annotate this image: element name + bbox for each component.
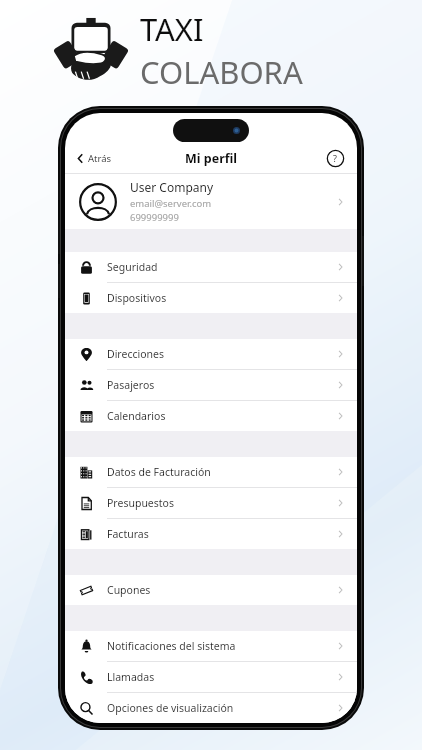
staticText: Presupuestos	[107, 496, 174, 510]
button[interactable]: Facturas	[65, 519, 357, 549]
staticText: Facturas	[107, 527, 149, 541]
button[interactable]: Cupones	[65, 575, 357, 605]
button[interactable]: Notificaciones del sistema	[65, 631, 357, 662]
staticText: COLABORA	[140, 51, 303, 93]
button[interactable]: Presupuestos	[65, 488, 357, 519]
button[interactable]: Pasajeros	[65, 370, 357, 401]
button[interactable]: Opciones de visualización	[65, 693, 357, 723]
staticText: TAXI	[140, 8, 204, 50]
staticText: Calendarios	[107, 409, 166, 423]
button[interactable]: Calendarios	[65, 401, 357, 431]
staticText: Cupones	[107, 583, 151, 597]
button[interactable]: Direcciones	[65, 339, 357, 370]
staticText: ?	[333, 152, 337, 164]
staticText: Notificaciones del sistema	[107, 639, 236, 653]
staticText: Direcciones	[107, 347, 165, 361]
button[interactable]: Dispositivos	[65, 283, 357, 313]
staticText: Llamadas	[107, 670, 155, 684]
button[interactable]: Seguridad	[65, 252, 357, 283]
staticText: Pasajeros	[107, 378, 155, 392]
staticText: 699999999	[130, 211, 179, 224]
button[interactable]: User Company	[65, 174, 357, 229]
staticText: Datos de Facturación	[107, 465, 211, 479]
staticText: Opciones de visualización	[107, 701, 234, 715]
button[interactable]: Datos de Facturación	[65, 457, 357, 488]
button[interactable]: Llamadas	[65, 662, 357, 693]
button[interactable]: Atrás	[75, 148, 114, 169]
staticText: Dispositivos	[107, 291, 167, 305]
button[interactable]: Ayuda	[323, 146, 347, 170]
staticText: email@server.com	[130, 197, 212, 210]
staticText: Seguridad	[107, 260, 158, 274]
staticText: Mi perfil	[185, 150, 238, 167]
staticText: Atrás	[88, 152, 112, 165]
staticText: User Company	[130, 179, 214, 195]
